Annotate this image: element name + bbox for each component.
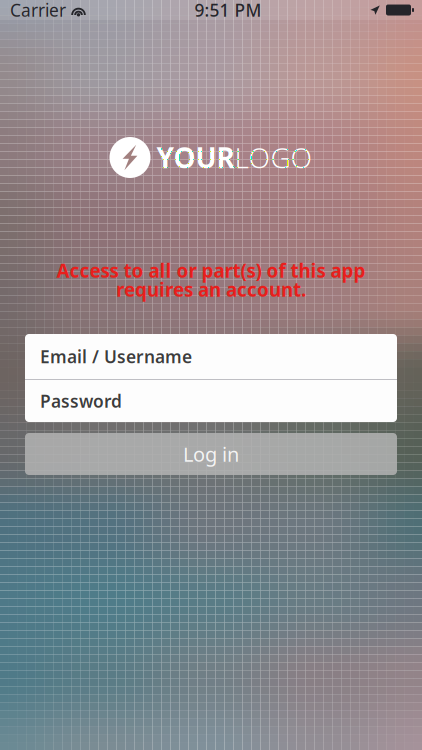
staticText: 9:51 PM: [194, 0, 261, 21]
staticText: Carrier: [10, 0, 66, 21]
button[interactable]: Email / Username: [25, 334, 397, 379]
staticText: Email / Username: [40, 345, 192, 368]
staticText: requires an account.: [116, 277, 306, 302]
staticText: Log in: [183, 441, 239, 467]
button[interactable]: Log in: [25, 433, 397, 475]
button[interactable]: Password: [25, 380, 397, 422]
staticText: LOGO: [234, 139, 312, 176]
staticText: YOUR: [156, 139, 234, 176]
staticText: Access to all or part(s) of this app: [56, 258, 365, 283]
staticText: Password: [40, 389, 122, 412]
